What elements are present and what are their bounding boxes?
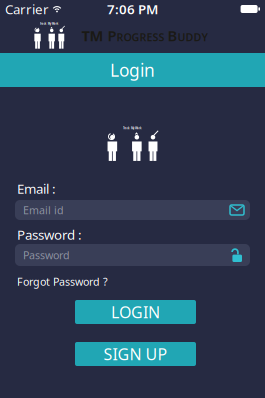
staticText: 7:06 PM: [107, 0, 158, 18]
staticText: SIGN UP: [103, 343, 167, 365]
button[interactable]: SIGN UP: [75, 342, 196, 366]
staticText: LOGIN: [111, 301, 160, 323]
staticText: Email id: [23, 203, 64, 217]
staticText: Password :: [17, 226, 82, 243]
button[interactable]: Email id: [15, 200, 250, 220]
staticText: Password: [23, 248, 70, 262]
button[interactable]: Password: [15, 244, 250, 266]
button[interactable]: LOGIN: [75, 300, 196, 324]
staticText: TM PROGRESS BUDDY: [82, 26, 208, 45]
staticText: Carrier: [5, 0, 49, 18]
staticText: Track My Work: [123, 126, 142, 130]
staticText: Email :: [17, 180, 56, 197]
staticText: Track My Work: [40, 22, 59, 25]
staticText: Forgot Password ?: [17, 274, 108, 289]
button[interactable]: Forgot Password ?: [15, 276, 108, 287]
staticText: Login: [110, 58, 155, 81]
